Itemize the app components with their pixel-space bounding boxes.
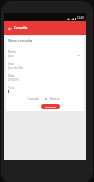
button[interactable]: Retorno bbox=[45, 98, 47, 100]
staticText: AGENDAR bbox=[45, 105, 57, 108]
staticText: Sexo bbox=[8, 62, 15, 66]
button[interactable]: Hora bbox=[6, 86, 84, 97]
staticText: 25/02/19 bbox=[8, 78, 19, 82]
staticText: Retorno bbox=[50, 97, 60, 101]
staticText: Hora bbox=[8, 86, 15, 90]
staticText: Joao da Silva bbox=[8, 66, 24, 70]
staticText: Data bbox=[8, 74, 15, 78]
staticText: Consulta bbox=[14, 26, 28, 30]
staticText: Nova consulta bbox=[8, 38, 33, 43]
button[interactable]: Sexo bbox=[6, 62, 84, 73]
button[interactable]: Back bbox=[5, 24, 14, 33]
staticText: Nome bbox=[8, 50, 17, 54]
staticText: Joao bbox=[8, 54, 14, 58]
staticText: 12:30 bbox=[77, 16, 84, 20]
button[interactable]: Data bbox=[6, 74, 84, 85]
button[interactable]: Nome bbox=[6, 50, 84, 61]
staticText: Consulta bbox=[28, 97, 39, 101]
button[interactable]: AGENDAR bbox=[41, 104, 60, 109]
